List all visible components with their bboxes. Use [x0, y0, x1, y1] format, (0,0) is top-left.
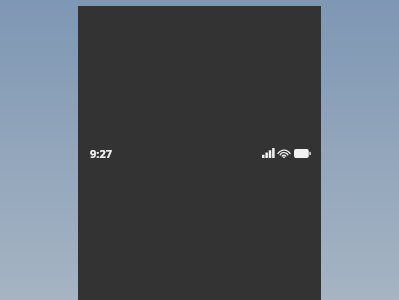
- staticText: 9:27: [90, 146, 112, 161]
